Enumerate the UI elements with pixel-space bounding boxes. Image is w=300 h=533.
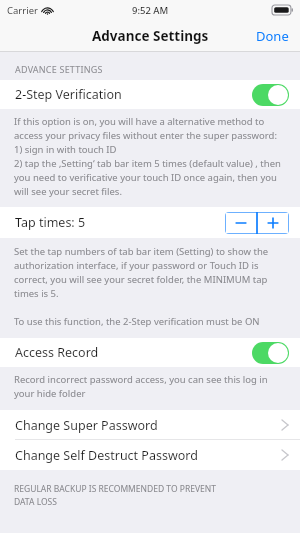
staticText: REGULAR BACKUP IS RECOMMENDED TO PREVENT… xyxy=(14,483,216,507)
button[interactable]: Increase xyxy=(257,212,289,234)
staticText: Carrier xyxy=(7,4,38,17)
button[interactable]: Change Super Password xyxy=(0,410,300,440)
button[interactable]: 2-Step Verification xyxy=(0,80,300,109)
staticText: 9:52 AM xyxy=(132,4,169,17)
button[interactable]: Access Record toggle, on xyxy=(252,342,289,364)
button[interactable]: Tap times: 5 xyxy=(0,207,300,238)
staticText: 2-Step Verification xyxy=(15,86,122,103)
staticText: If this option is on, you will have a al… xyxy=(14,115,288,198)
staticText: Change Self Destruct Password xyxy=(15,447,198,464)
button[interactable]: Decrease xyxy=(225,212,257,234)
button[interactable]: 2-Step Verification toggle, on xyxy=(252,84,289,106)
button[interactable]: Change Self Destruct Password xyxy=(0,440,300,470)
staticText: Tap times: 5 xyxy=(15,214,86,231)
staticText: Advance Settings xyxy=(92,27,209,45)
staticText: Access Record xyxy=(15,344,99,361)
staticText: Done xyxy=(256,27,289,45)
staticText: Change Super Password xyxy=(15,417,158,434)
staticText: Set the tap numbers of tab bar item (Set… xyxy=(14,245,288,328)
button[interactable]: Done xyxy=(245,21,300,51)
staticText: ADVANCE SETTINGS xyxy=(15,63,103,75)
button[interactable]: Access Record xyxy=(0,338,300,367)
staticText: Record incorrect password access, you ca… xyxy=(14,373,288,400)
